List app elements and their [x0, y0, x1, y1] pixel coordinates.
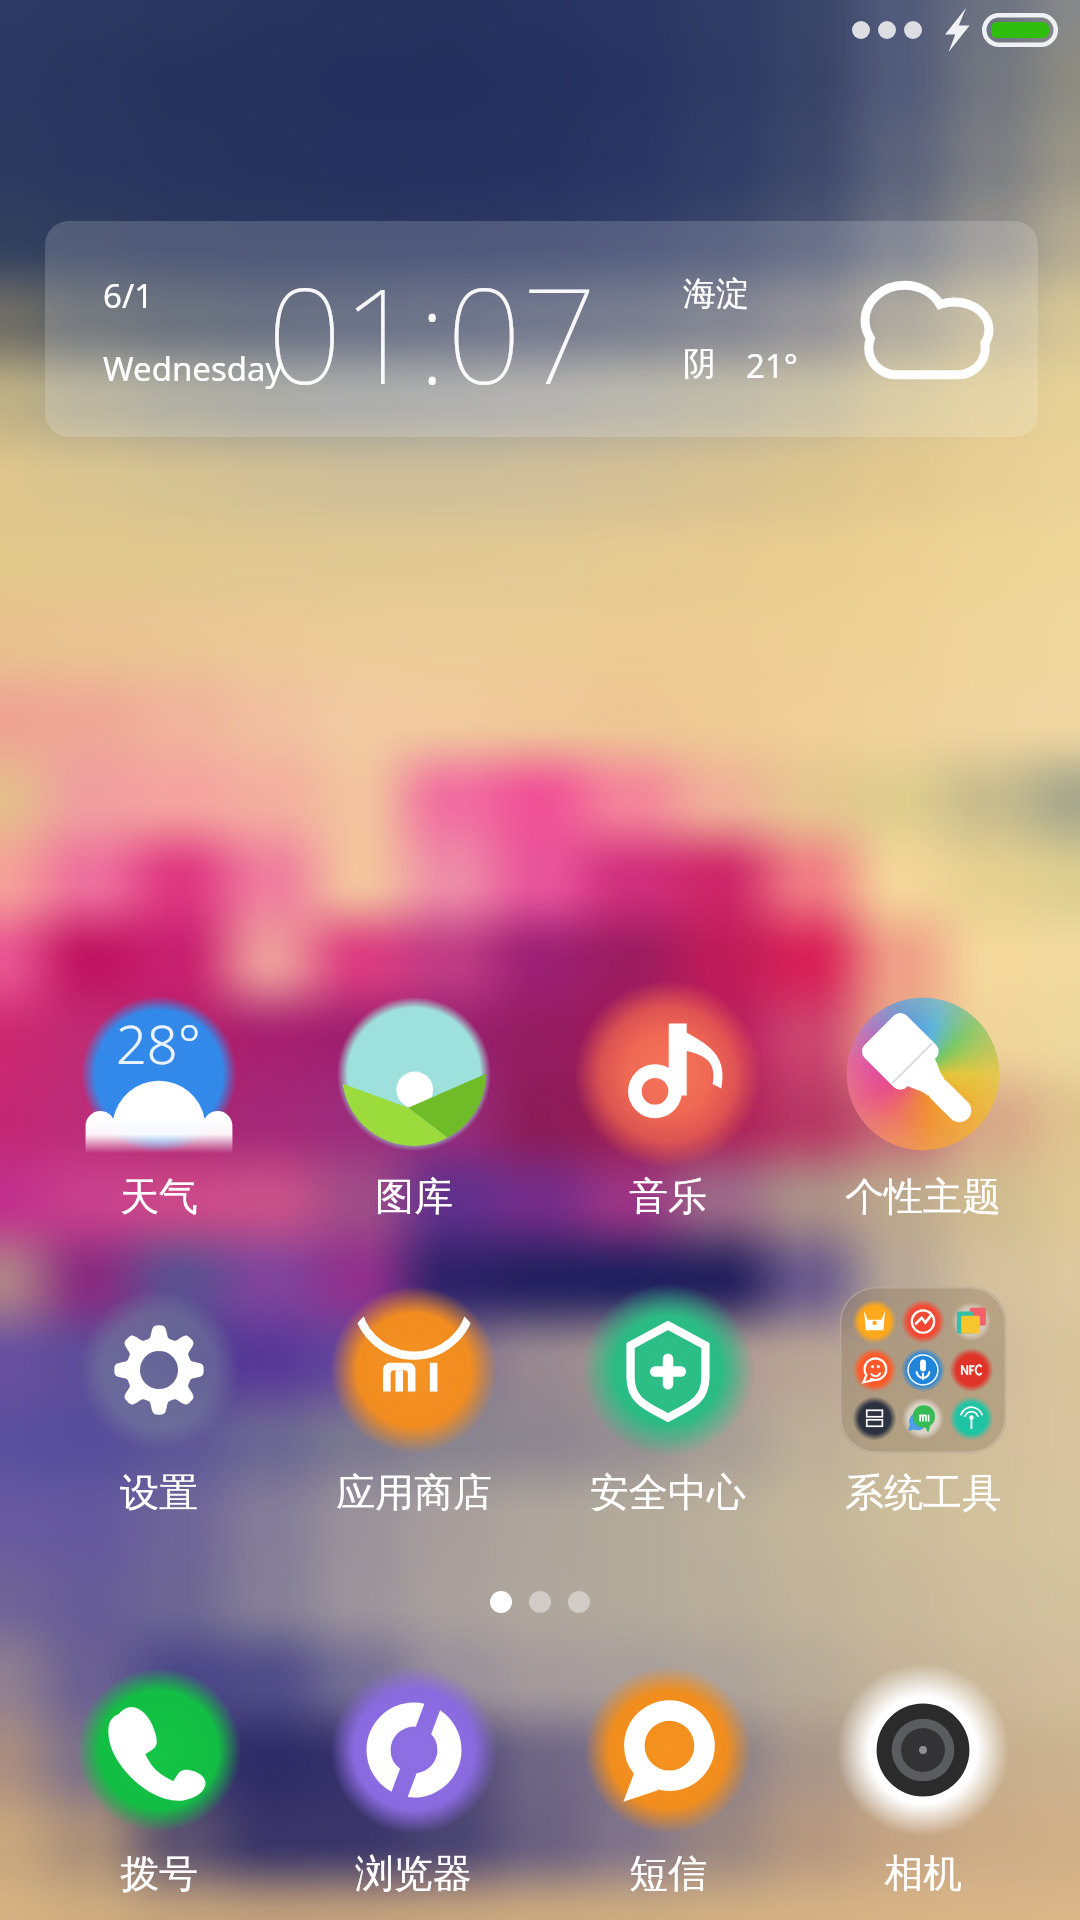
staticText: 21°	[746, 343, 798, 388]
staticText: 图库	[375, 1172, 453, 1221]
staticText: 阴	[683, 343, 716, 385]
staticText: 音乐	[629, 1172, 707, 1221]
staticText: 设置	[120, 1468, 198, 1517]
staticText: 拨号	[120, 1849, 198, 1898]
staticText: 安全中心	[590, 1468, 746, 1517]
staticText: 天气	[120, 1172, 198, 1221]
staticText: 应用商店	[336, 1468, 492, 1517]
button[interactable]: Messages	[540, 1654, 795, 1907]
button[interactable]: Security	[540, 1274, 795, 1526]
staticText: 相机	[884, 1849, 962, 1898]
staticText: 28°	[116, 1006, 201, 1066]
button[interactable]: Phone	[31, 1654, 286, 1907]
button[interactable]: App Store	[286, 1274, 541, 1526]
staticText: 海淀	[683, 273, 749, 315]
staticText: 浏览器	[355, 1849, 472, 1898]
button[interactable]: Themes	[795, 978, 1050, 1230]
staticText: 个性主题	[845, 1172, 1001, 1221]
button[interactable]: Music	[540, 978, 795, 1230]
button[interactable]: Gallery	[286, 978, 541, 1230]
button[interactable]: Camera	[795, 1654, 1050, 1907]
staticText: Wednesday	[103, 346, 283, 391]
button[interactable]: 6/1	[45, 221, 1038, 437]
button[interactable]: Browser	[286, 1654, 541, 1907]
staticText: 6/1	[103, 273, 154, 318]
button[interactable]: System Tools	[795, 1274, 1050, 1526]
staticText: 短信	[629, 1849, 707, 1898]
staticText: 01:07	[267, 243, 597, 423]
button[interactable]: Settings	[31, 1274, 286, 1526]
staticText: 系统工具	[845, 1468, 1001, 1517]
button[interactable]: Weather	[31, 978, 286, 1230]
